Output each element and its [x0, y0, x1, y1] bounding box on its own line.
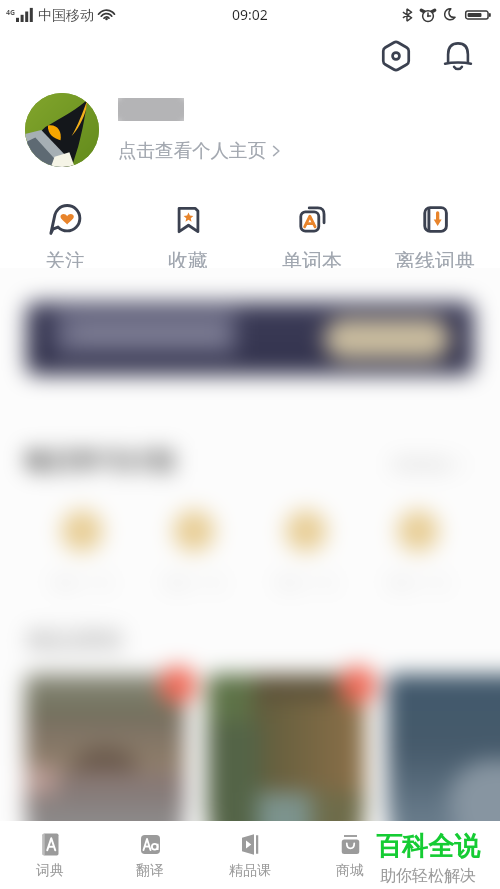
staticText: 词典: [36, 862, 64, 880]
staticText: 4G: [6, 8, 16, 18]
button[interactable]: 词典: [0, 821, 100, 889]
staticText: 百科全说: [376, 830, 480, 863]
staticText: 精品课: [229, 862, 271, 880]
staticText: 点击查看个人主页: [118, 139, 266, 162]
button[interactable]: 商城: [300, 821, 400, 889]
button[interactable]: 精品课: [200, 821, 300, 889]
button[interactable]: 单词本: [253, 196, 371, 280]
button[interactable]: 收藏: [129, 196, 247, 280]
button[interactable]: 点击查看个人主页: [25, 86, 300, 174]
button[interactable]: 翻译: [100, 821, 200, 889]
staticText: 09:02: [232, 5, 268, 24]
button[interactable]: Notifications: [436, 34, 480, 78]
staticText: 中国移动: [38, 7, 94, 25]
staticText: 关注: [45, 249, 85, 274]
staticText: 离线词典: [395, 249, 475, 274]
staticText: 翻译: [136, 862, 164, 880]
button[interactable]: 离线词典: [376, 196, 494, 280]
staticText: 精品课程: [26, 626, 122, 656]
staticText: 助你轻松解决: [380, 866, 476, 886]
staticText: 单词本: [282, 249, 342, 274]
staticText: 商城: [336, 862, 364, 880]
staticText: 每日学习计划: [24, 446, 174, 477]
staticText: 收藏: [168, 249, 208, 274]
button[interactable]: Settings: [374, 34, 418, 78]
button[interactable]: 关注: [6, 196, 124, 280]
